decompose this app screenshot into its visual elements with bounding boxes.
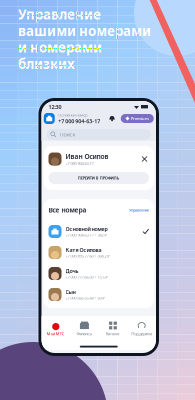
button[interactable]: Premium (121, 114, 154, 123)
staticText: Основной номер (58, 112, 87, 118)
staticText: Мой МТС (47, 331, 65, 336)
staticText: +7 000 904-63-17 (65, 161, 93, 166)
staticText: Катя Осипова (65, 246, 101, 253)
button[interactable]: Закрыть (140, 154, 149, 163)
button[interactable]: Дочь (43, 263, 154, 284)
button[interactable]: Сын (43, 284, 154, 305)
staticText: 12:30 (48, 103, 61, 111)
staticText: Управление (129, 207, 149, 213)
staticText: Иван Осипов (65, 152, 108, 161)
staticText: +7 000 666-55-44 • 50 ₽ (65, 295, 104, 301)
staticText: близких (18, 55, 75, 73)
staticText: вашими номерами (18, 22, 151, 40)
staticText: Сын (65, 288, 75, 295)
staticText: Premium (131, 116, 149, 121)
button[interactable]: Мой МТС (41, 316, 70, 342)
button[interactable]: ПЕРЕЙТИ В ПРОФИЛЬ (48, 172, 149, 184)
staticText: +7 000 777-66-50 • 15,5 ₽ (65, 274, 107, 280)
staticText: +7 000 895-77-60 • 304,2 ₽ (65, 253, 109, 259)
staticText: Поддержка (131, 331, 152, 336)
staticText: Поиск (59, 131, 75, 138)
button[interactable]: Поддержка (127, 316, 156, 342)
staticText: Финансы (76, 331, 92, 336)
staticText: Дочь (65, 267, 78, 274)
button[interactable]: Поиск (46, 129, 151, 140)
button[interactable]: Основной номер (43, 221, 154, 242)
staticText: и номерами (18, 38, 102, 56)
button[interactable]: Катя Осипова (43, 242, 154, 263)
staticText: +7 000 904-63-17 • 382 ₽ (65, 232, 106, 238)
button[interactable]: Управление (129, 207, 149, 213)
button[interactable]: Финансы (70, 316, 99, 342)
staticText: Все номера (48, 206, 86, 214)
staticText: ПЕРЕЙТИ В ПРОФИЛЬ (78, 175, 120, 181)
staticText: Основной номер (65, 225, 107, 232)
staticText: +7 000 904-63-17 (58, 118, 100, 125)
staticText: Управление (18, 5, 101, 23)
staticText: Каталог (106, 331, 120, 336)
button[interactable]: Каталог (99, 316, 127, 342)
button[interactable]: Уведомления (107, 115, 117, 122)
